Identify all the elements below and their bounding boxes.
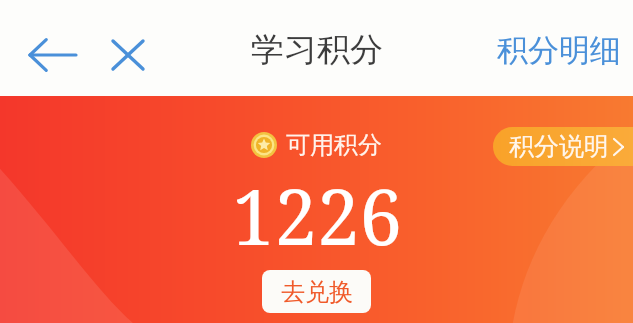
button[interactable]: 积分说明 [493,127,633,166]
button[interactable]: 积分明细 [497,31,621,70]
staticText: 去兑换 [281,277,353,307]
button[interactable]: 去兑换 [262,270,371,313]
button[interactable]: Back [16,27,88,83]
staticText: 可用积分 [286,130,382,160]
staticText: 1226 [232,164,402,268]
button[interactable]: Close [98,27,158,83]
staticText: 积分明细 [497,31,621,70]
staticText: 积分说明 [509,131,609,162]
staticText: 学习积分 [251,29,383,71]
